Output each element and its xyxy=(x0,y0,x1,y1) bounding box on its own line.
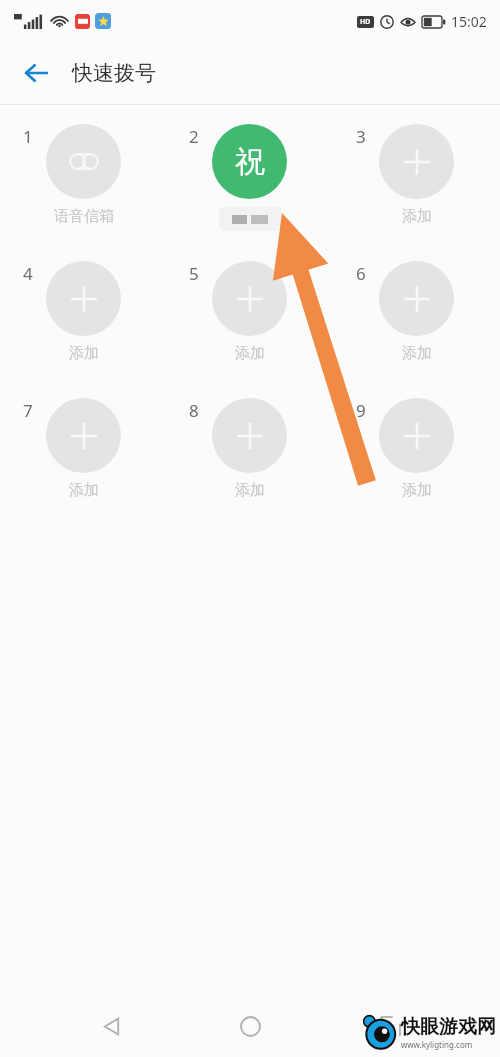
staticText: 添加 xyxy=(402,207,432,226)
button[interactable]: 添加 xyxy=(379,124,454,226)
staticText: 添加 xyxy=(235,344,265,363)
staticText: 8 xyxy=(189,399,199,422)
button[interactable]: Recents xyxy=(361,997,419,1055)
staticText: 9 xyxy=(356,399,366,422)
staticText: 7 xyxy=(23,399,33,422)
staticText: 添加 xyxy=(402,344,432,363)
button[interactable]: Home xyxy=(221,997,279,1055)
staticText: 祝 xyxy=(235,143,265,181)
staticText: 快速拨号 xyxy=(72,60,156,86)
staticText: 5 xyxy=(189,262,199,285)
staticText: 4 xyxy=(23,262,33,285)
button[interactable]: 添加 xyxy=(46,261,121,363)
staticText: 语音信箱 xyxy=(54,207,114,226)
staticText: HD xyxy=(360,17,371,27)
staticText: 6 xyxy=(356,262,366,285)
button[interactable]: 语音信箱 xyxy=(46,124,121,226)
staticText: 添加 xyxy=(69,481,99,500)
staticText: 2 xyxy=(189,125,199,148)
button[interactable]: 添加 xyxy=(212,261,287,363)
button[interactable]: Back xyxy=(82,997,140,1055)
button[interactable]: 添加 xyxy=(212,398,287,500)
staticText: 15:02 xyxy=(451,12,487,31)
staticText: 添加 xyxy=(235,481,265,500)
staticText: 添加 xyxy=(402,481,432,500)
button[interactable]: Back xyxy=(10,47,62,99)
button[interactable]: 添加 xyxy=(379,398,454,500)
staticText: 添加 xyxy=(69,344,99,363)
button[interactable]: 祝 xyxy=(212,124,287,231)
staticText: 1 xyxy=(23,125,33,148)
staticText: 快眼游戏网 xyxy=(401,1015,496,1039)
staticText: 3 xyxy=(356,125,366,148)
button[interactable]: 添加 xyxy=(46,398,121,500)
staticText: www.kyligting.com xyxy=(401,1039,473,1050)
button[interactable]: 添加 xyxy=(379,261,454,363)
